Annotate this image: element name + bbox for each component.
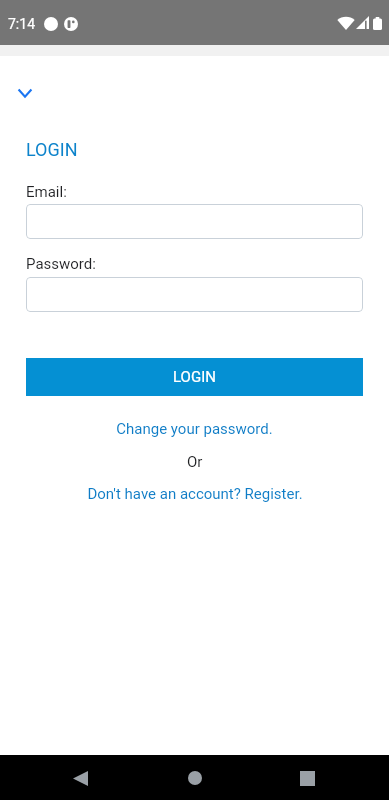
button[interactable]: LOGIN: [26, 358, 363, 396]
staticText: Email:: [26, 183, 67, 201]
button[interactable]: Back: [60, 758, 100, 798]
button[interactable]: Don't have an account? Register.: [26, 485, 363, 503]
button[interactable]: Home: [175, 758, 215, 798]
staticText: 7:14: [8, 16, 35, 32]
staticText: Password:: [26, 255, 96, 273]
button[interactable]: Recents: [287, 758, 327, 798]
button[interactable]: [26, 277, 363, 312]
staticText: LOGIN: [26, 139, 78, 160]
staticText: Or: [187, 453, 203, 471]
button[interactable]: [26, 204, 363, 239]
staticText: Change your password.: [116, 420, 273, 438]
button[interactable]: Change your password.: [26, 420, 363, 438]
staticText: Don't have an account? Register.: [87, 485, 303, 503]
button[interactable]: Collapse: [11, 80, 38, 107]
staticText: LOGIN: [173, 368, 216, 386]
